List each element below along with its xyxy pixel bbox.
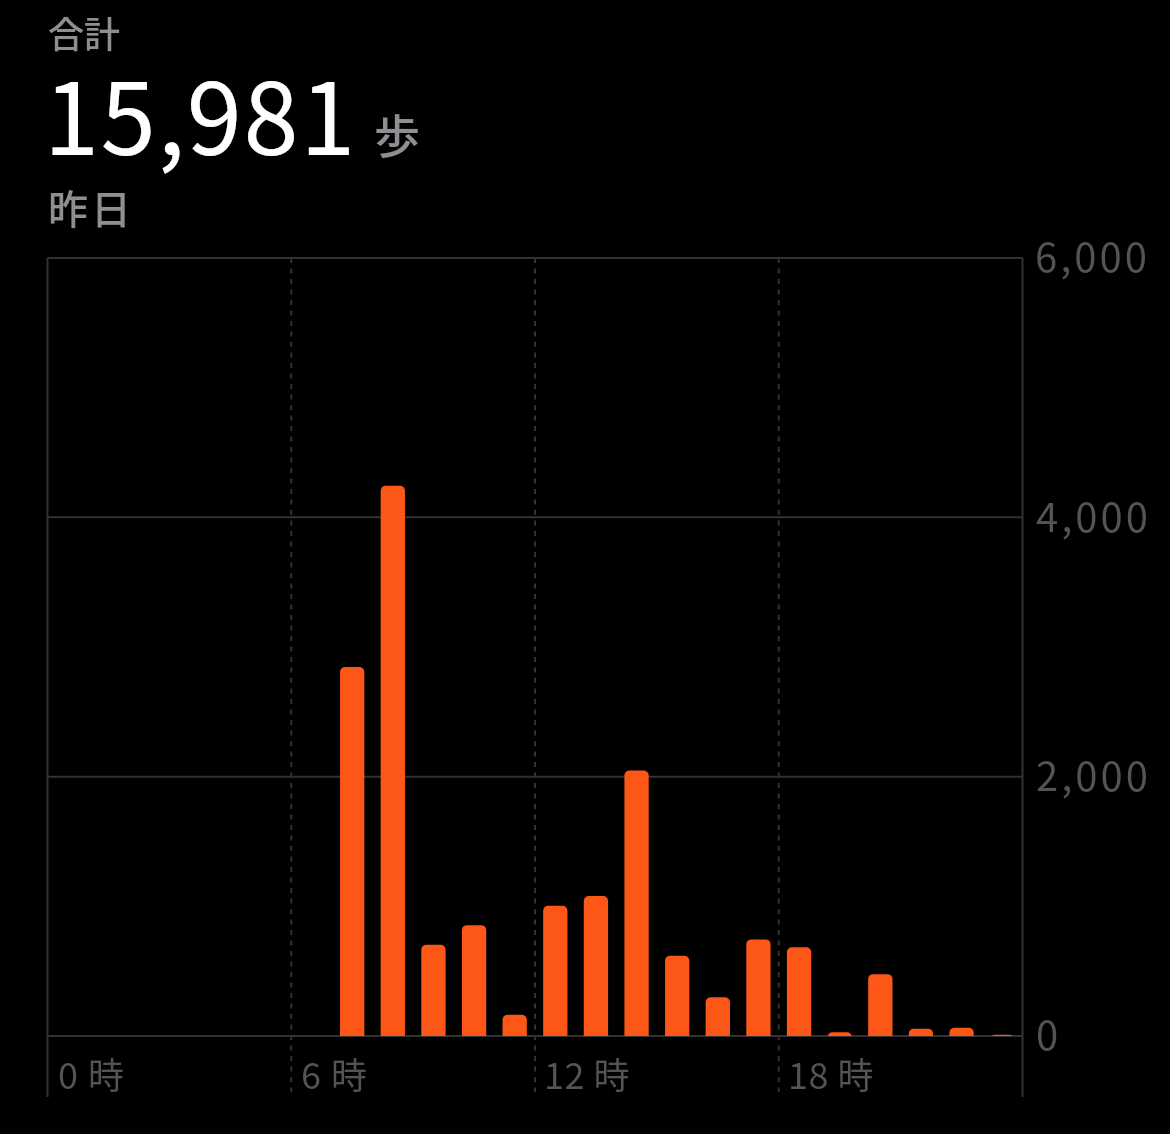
staticText: 0 時 [58, 1047, 126, 1099]
staticText: 4,000 [1036, 486, 1151, 544]
staticText: 昨日 [48, 178, 134, 236]
staticText: 6,000 [1035, 226, 1150, 284]
staticText: 15,981 [44, 40, 358, 183]
staticText: 2,000 [1036, 745, 1151, 803]
staticText: 6 時 [301, 1047, 369, 1099]
staticText: 0 [1036, 1004, 1062, 1062]
button[interactable]: 合計 [0, 0, 1170, 240]
button[interactable]: Hourly step chart for yesterday [0, 240, 1170, 1134]
staticText: 12 時 [544, 1047, 631, 1099]
staticText: 合計 [48, 6, 121, 58]
staticText: 歩 [374, 100, 420, 167]
staticText: 18 時 [788, 1047, 875, 1099]
